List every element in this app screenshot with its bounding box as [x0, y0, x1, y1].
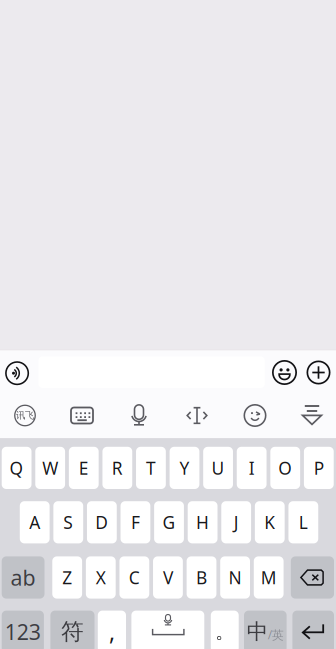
staticText: 123	[5, 617, 41, 646]
staticText: P	[314, 456, 324, 479]
button[interactable]: Space	[131, 611, 204, 649]
button[interactable]: ,	[98, 611, 126, 649]
button[interactable]: T	[136, 447, 166, 489]
staticText: U	[212, 456, 225, 479]
button[interactable]: Delete	[291, 556, 334, 599]
button[interactable]: L	[288, 501, 318, 543]
button[interactable]: Y	[170, 447, 199, 489]
button[interactable]: Input method	[8, 398, 42, 432]
button[interactable]: G	[154, 501, 184, 543]
staticText: S	[63, 511, 73, 534]
button[interactable]: E	[69, 447, 99, 489]
button[interactable]: R	[102, 447, 132, 489]
button[interactable]: H	[188, 501, 217, 543]
staticText: ab	[11, 563, 36, 592]
button[interactable]: 123	[2, 611, 44, 649]
staticText: I	[249, 456, 255, 479]
button[interactable]: 。	[211, 611, 239, 649]
staticText: 讯飞	[16, 410, 34, 421]
button[interactable]: J	[221, 501, 251, 543]
button[interactable]: N	[220, 556, 250, 599]
staticText: T	[146, 456, 156, 479]
staticText: H	[196, 511, 209, 534]
button[interactable]: Hide keyboard	[295, 397, 329, 431]
button[interactable]: Hold to talk	[1, 357, 33, 389]
button[interactable]: O	[270, 447, 300, 489]
staticText: /英	[268, 627, 284, 643]
staticText: Q	[10, 456, 24, 479]
button[interactable]: Return	[292, 611, 334, 649]
button[interactable]: Stickers	[268, 356, 300, 388]
button[interactable]: Q	[2, 447, 31, 489]
button[interactable]: 符	[50, 611, 94, 649]
staticText: R	[112, 456, 123, 479]
button[interactable]: X	[86, 556, 116, 599]
staticText: V	[163, 566, 173, 589]
button[interactable]: P	[304, 447, 334, 489]
button[interactable]: More	[302, 356, 334, 388]
staticText: 符	[61, 618, 84, 646]
staticText: ,	[109, 617, 115, 647]
staticText: E	[79, 456, 89, 479]
staticText: 。	[215, 620, 234, 643]
staticText: Y	[179, 456, 189, 479]
staticText: W	[42, 456, 58, 479]
staticText: Z	[62, 566, 72, 589]
staticText: C	[129, 566, 140, 589]
button[interactable]: Chinese / English	[244, 611, 287, 649]
staticText: G	[162, 511, 175, 534]
staticText: L	[299, 511, 308, 534]
button[interactable]: S	[53, 501, 83, 543]
staticText: F	[131, 511, 140, 534]
button[interactable]: I	[237, 447, 267, 489]
button[interactable]: Voice input	[122, 398, 156, 432]
button[interactable]: D	[87, 501, 117, 543]
button[interactable]: W	[35, 447, 65, 489]
button[interactable]: U	[203, 447, 233, 489]
staticText: K	[264, 511, 275, 534]
staticText: D	[95, 511, 108, 534]
staticText: M	[261, 566, 277, 589]
button[interactable]: F	[120, 501, 150, 543]
staticText: 中	[247, 619, 268, 645]
button[interactable]: Emoji	[238, 398, 272, 432]
staticText: A	[29, 511, 40, 534]
button[interactable]: ab	[2, 556, 44, 599]
button[interactable]: M	[254, 556, 284, 599]
button[interactable]: Move cursor	[180, 398, 214, 432]
button[interactable]: A	[20, 501, 50, 543]
staticText: B	[196, 566, 207, 589]
staticText: J	[234, 511, 239, 534]
button[interactable]: K	[255, 501, 285, 543]
button[interactable]: Keyboard layout	[65, 398, 99, 432]
button[interactable]: V	[153, 556, 183, 599]
staticText: O	[278, 456, 292, 479]
button[interactable]: B	[187, 556, 216, 599]
button[interactable]: C	[119, 556, 149, 599]
staticText: X	[96, 566, 106, 589]
button[interactable]: Z	[52, 556, 82, 599]
staticText: N	[229, 566, 242, 589]
